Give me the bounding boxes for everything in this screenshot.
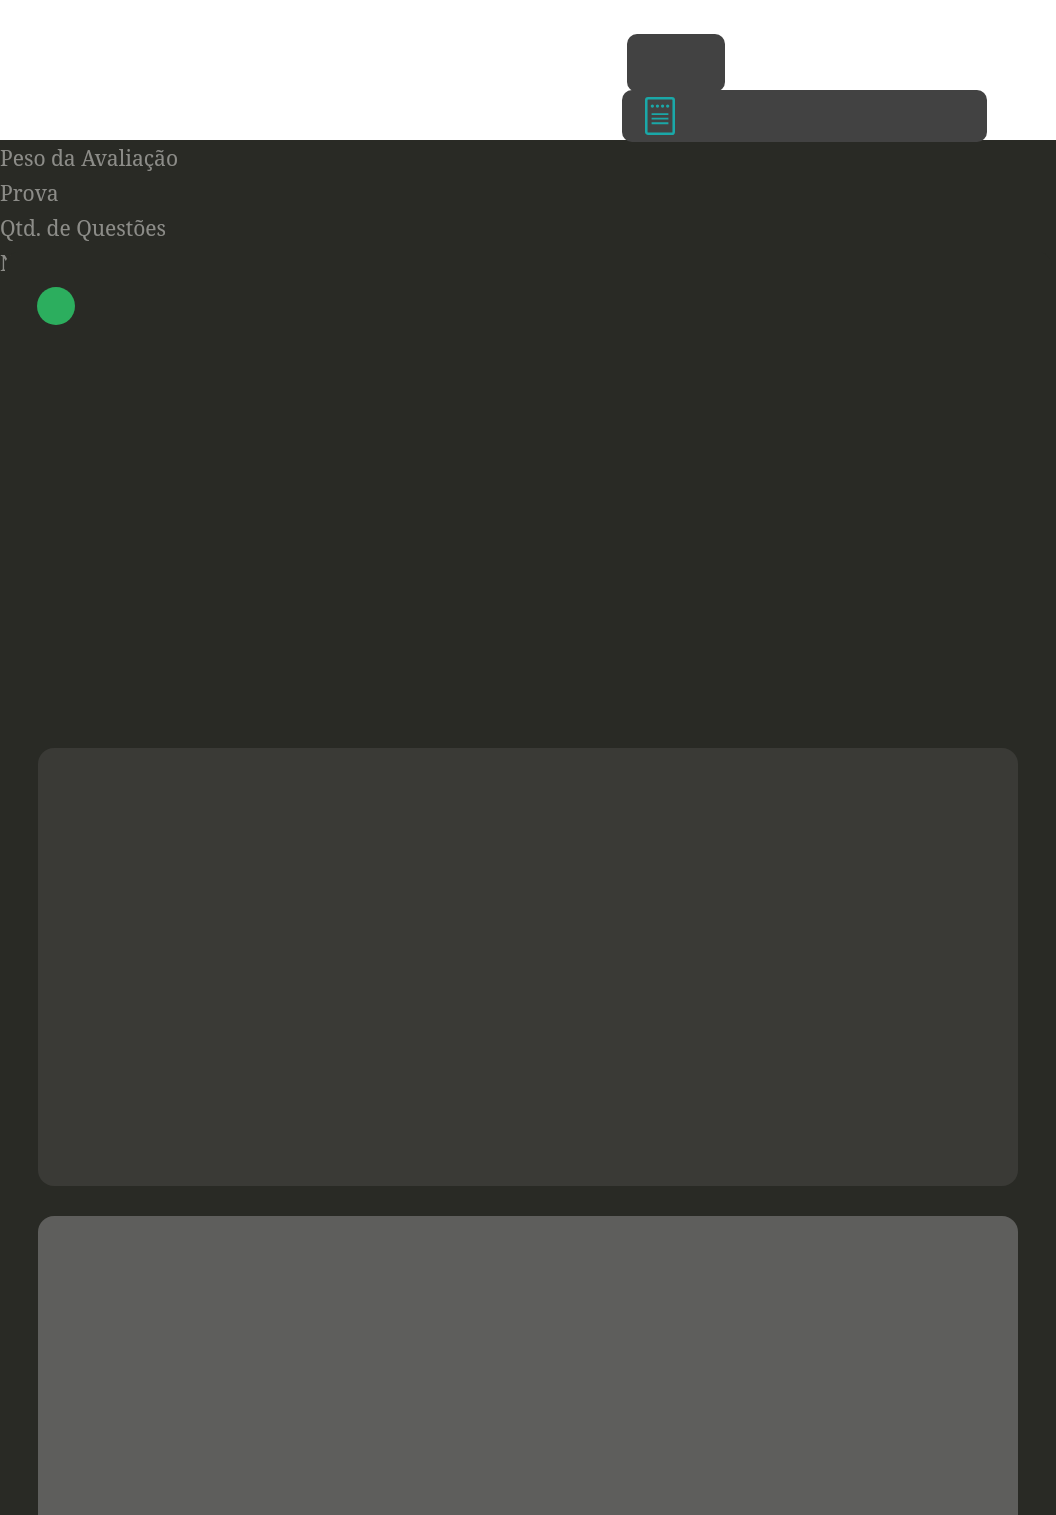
staticText: Qtd. de Questões bbox=[0, 214, 167, 243]
staticText: Prova bbox=[0, 179, 59, 208]
button[interactable] bbox=[627, 34, 725, 92]
staticText: Nota bbox=[0, 249, 48, 278]
button[interactable]: Avaliações bbox=[645, 97, 675, 135]
staticText: Peso da Avaliação bbox=[0, 144, 178, 173]
button[interactable] bbox=[37, 287, 75, 325]
